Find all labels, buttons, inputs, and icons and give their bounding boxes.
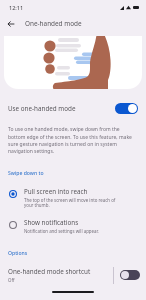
staticText: One-handed mode (25, 19, 82, 28)
staticText: Swipe down to (8, 170, 44, 177)
staticText: Options (8, 250, 28, 257)
button[interactable]: Pull screen into reach (0, 185, 146, 211)
button[interactable]: Toggle shortcut (114, 264, 146, 286)
staticText: Notification and settings will appear. (24, 228, 99, 234)
staticText: 12:11 (9, 4, 24, 11)
button[interactable]: Use one-handed mode (0, 100, 146, 117)
staticText: The top of the screen will move into rea… (24, 197, 116, 209)
staticText: One-handed mode shortcut (8, 267, 91, 276)
button[interactable]: Show notifications (0, 216, 146, 236)
staticText: Off (8, 277, 15, 283)
staticText: To use one handed mode, swipe down from … (8, 126, 137, 154)
button[interactable]: One-handed mode shortcut (0, 267, 113, 283)
staticText: Pull screen into reach (24, 187, 88, 196)
staticText: Use one-handed mode (8, 104, 115, 113)
staticText: Show notifications (24, 218, 79, 227)
button[interactable]: Back (3, 16, 19, 32)
